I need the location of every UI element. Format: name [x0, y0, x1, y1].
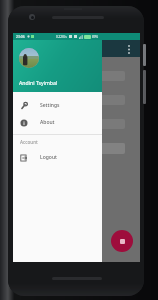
button[interactable]: More options: [122, 42, 136, 56]
staticText: 23:06: [16, 34, 25, 39]
staticText: About: [40, 119, 55, 126]
staticText: Settings: [40, 102, 60, 109]
staticText: 0.22K/s: [56, 35, 67, 39]
staticText: Logout: [40, 154, 57, 161]
button[interactable]: Logout: [13, 149, 102, 166]
button[interactable]: Settings: [13, 97, 102, 114]
button[interactable]: Add: [111, 230, 133, 252]
staticText: 89%: [92, 35, 99, 39]
button[interactable]: About: [13, 114, 102, 131]
staticText: Account: [20, 139, 38, 145]
staticText: Andini Tsyimbal: [19, 79, 58, 86]
